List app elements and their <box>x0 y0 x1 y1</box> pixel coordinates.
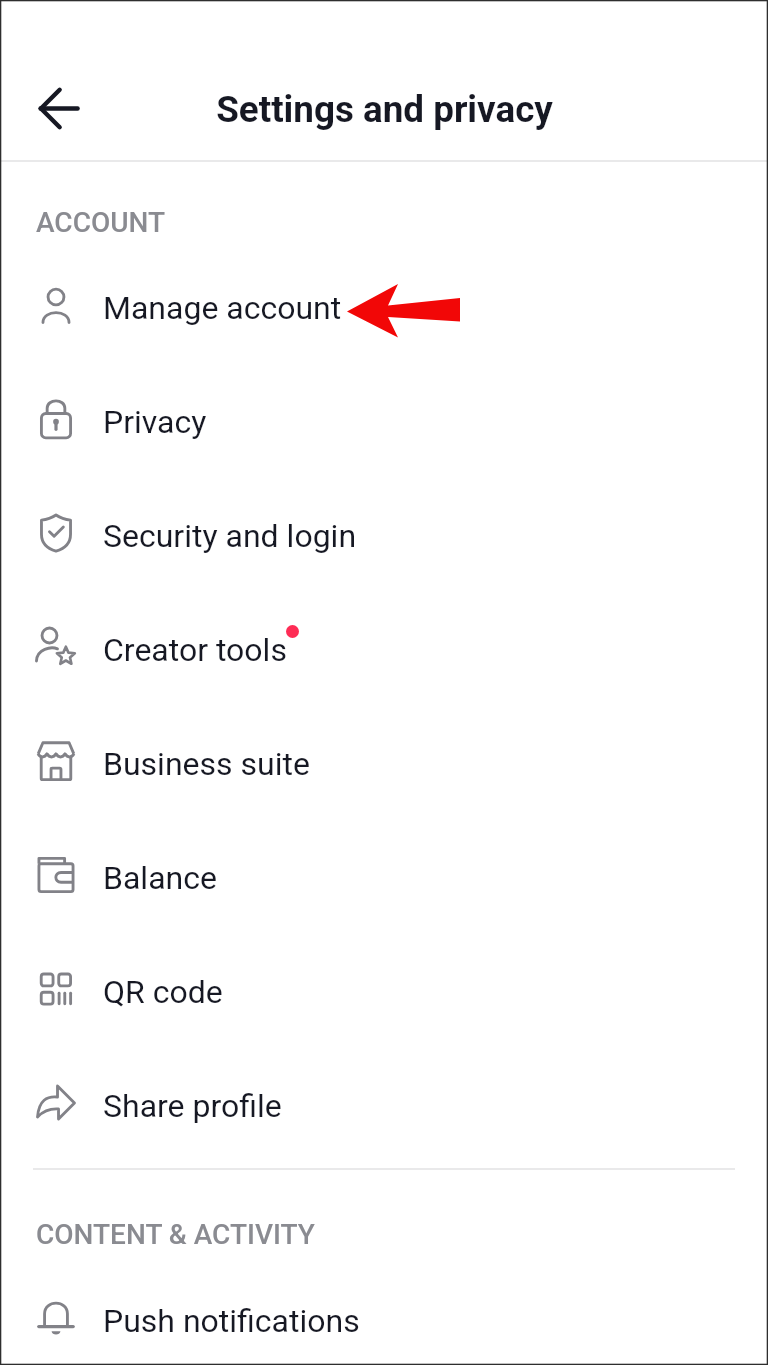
button[interactable]: Security and login <box>0 479 768 593</box>
staticText: Creator tools <box>103 631 287 669</box>
staticText: Share profile <box>103 1087 282 1125</box>
staticText: Settings and privacy <box>216 88 553 131</box>
button[interactable]: QR code <box>0 935 768 1049</box>
button[interactable]: Balance <box>0 821 768 935</box>
staticText: Manage account <box>103 289 342 327</box>
staticText: CONTENT & ACTIVITY <box>36 1218 315 1251</box>
staticText: Push notifications <box>103 1302 360 1340</box>
button[interactable]: Business suite <box>0 707 768 821</box>
staticText: QR code <box>103 973 223 1011</box>
staticText: Business suite <box>103 745 310 783</box>
staticText: Security and login <box>103 517 357 555</box>
button[interactable]: Share profile <box>0 1049 768 1163</box>
button[interactable]: Manage account <box>0 251 768 365</box>
staticText: Balance <box>103 859 217 897</box>
button[interactable]: Push notifications <box>0 1277 768 1365</box>
button[interactable]: Privacy <box>0 365 768 479</box>
button[interactable]: Back <box>12 62 104 154</box>
staticText: Privacy <box>103 403 207 441</box>
button[interactable]: Creator tools <box>0 593 768 707</box>
staticText: ACCOUNT <box>36 206 166 239</box>
